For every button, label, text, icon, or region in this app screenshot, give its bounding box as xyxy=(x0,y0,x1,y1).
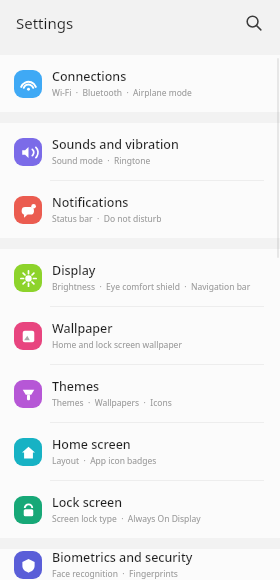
button[interactable]: Connections xyxy=(0,55,280,112)
staticText: Display xyxy=(52,262,96,279)
staticText: Themes · Wallpapers · Icons xyxy=(52,397,172,409)
button[interactable]: Themes xyxy=(0,365,280,422)
staticText: Status bar · Do not disturb xyxy=(52,213,162,225)
staticText: Sound mode · Ringtone xyxy=(52,155,151,167)
button[interactable]: Lock screen xyxy=(0,481,280,538)
button[interactable]: Home screen xyxy=(0,423,280,480)
button[interactable]: Search settings xyxy=(238,7,270,39)
button[interactable]: Sounds and vibration xyxy=(0,123,280,180)
staticText: Themes xyxy=(52,378,100,395)
staticText: Screen lock type · Always On Display xyxy=(52,513,201,525)
staticText: Brightness · Eye comfort shield · Naviga… xyxy=(52,281,251,293)
staticText: Home screen xyxy=(52,436,131,453)
staticText: Layout · App icon badges xyxy=(52,455,157,467)
button[interactable]: Display xyxy=(0,249,280,306)
staticText: Sounds and vibration xyxy=(52,136,179,153)
staticText: Biometrics and security xyxy=(52,549,193,566)
button[interactable]: Wallpaper xyxy=(0,307,280,364)
staticText: Connections xyxy=(52,68,127,85)
staticText: Settings xyxy=(16,13,74,33)
staticText: Home and lock screen wallpaper xyxy=(52,339,182,351)
staticText: Face recognition · Fingerprints xyxy=(52,568,178,580)
staticText: Notifications xyxy=(52,194,129,211)
button[interactable]: Notifications xyxy=(0,181,280,238)
staticText: Lock screen xyxy=(52,494,123,511)
staticText: Wi-Fi · Bluetooth · Airplane mode xyxy=(52,87,192,99)
button[interactable]: Biometrics and security xyxy=(0,549,280,580)
staticText: Wallpaper xyxy=(52,320,113,337)
